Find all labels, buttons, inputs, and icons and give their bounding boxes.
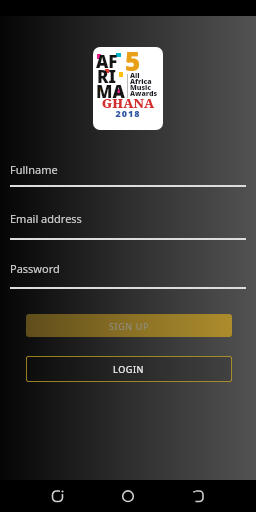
button[interactable] (121, 489, 135, 503)
staticText: Awards (130, 89, 158, 99)
button[interactable]: SIGN UP (26, 314, 232, 337)
staticText: Password (10, 261, 60, 276)
staticText: All (130, 71, 140, 81)
staticText: Africa (130, 77, 152, 87)
button[interactable] (51, 489, 65, 503)
button[interactable]: Email address (10, 211, 82, 231)
button[interactable] (191, 489, 205, 503)
button[interactable]: Fullname (10, 162, 58, 182)
staticText: MA (96, 80, 125, 103)
staticText: Music (130, 83, 152, 93)
staticText: RI (97, 65, 116, 88)
staticText: Email address (10, 211, 82, 226)
staticText: 2018 (93, 107, 163, 119)
staticText: AF (96, 50, 118, 73)
staticText: LOGIN (113, 363, 145, 375)
button[interactable]: LOGIN (26, 356, 232, 382)
staticText: GHANA (93, 94, 163, 112)
staticText: 5 (125, 47, 141, 78)
staticText: SIGN UP (109, 320, 149, 332)
staticText: Fullname (10, 162, 58, 177)
button[interactable]: Password (10, 261, 60, 281)
